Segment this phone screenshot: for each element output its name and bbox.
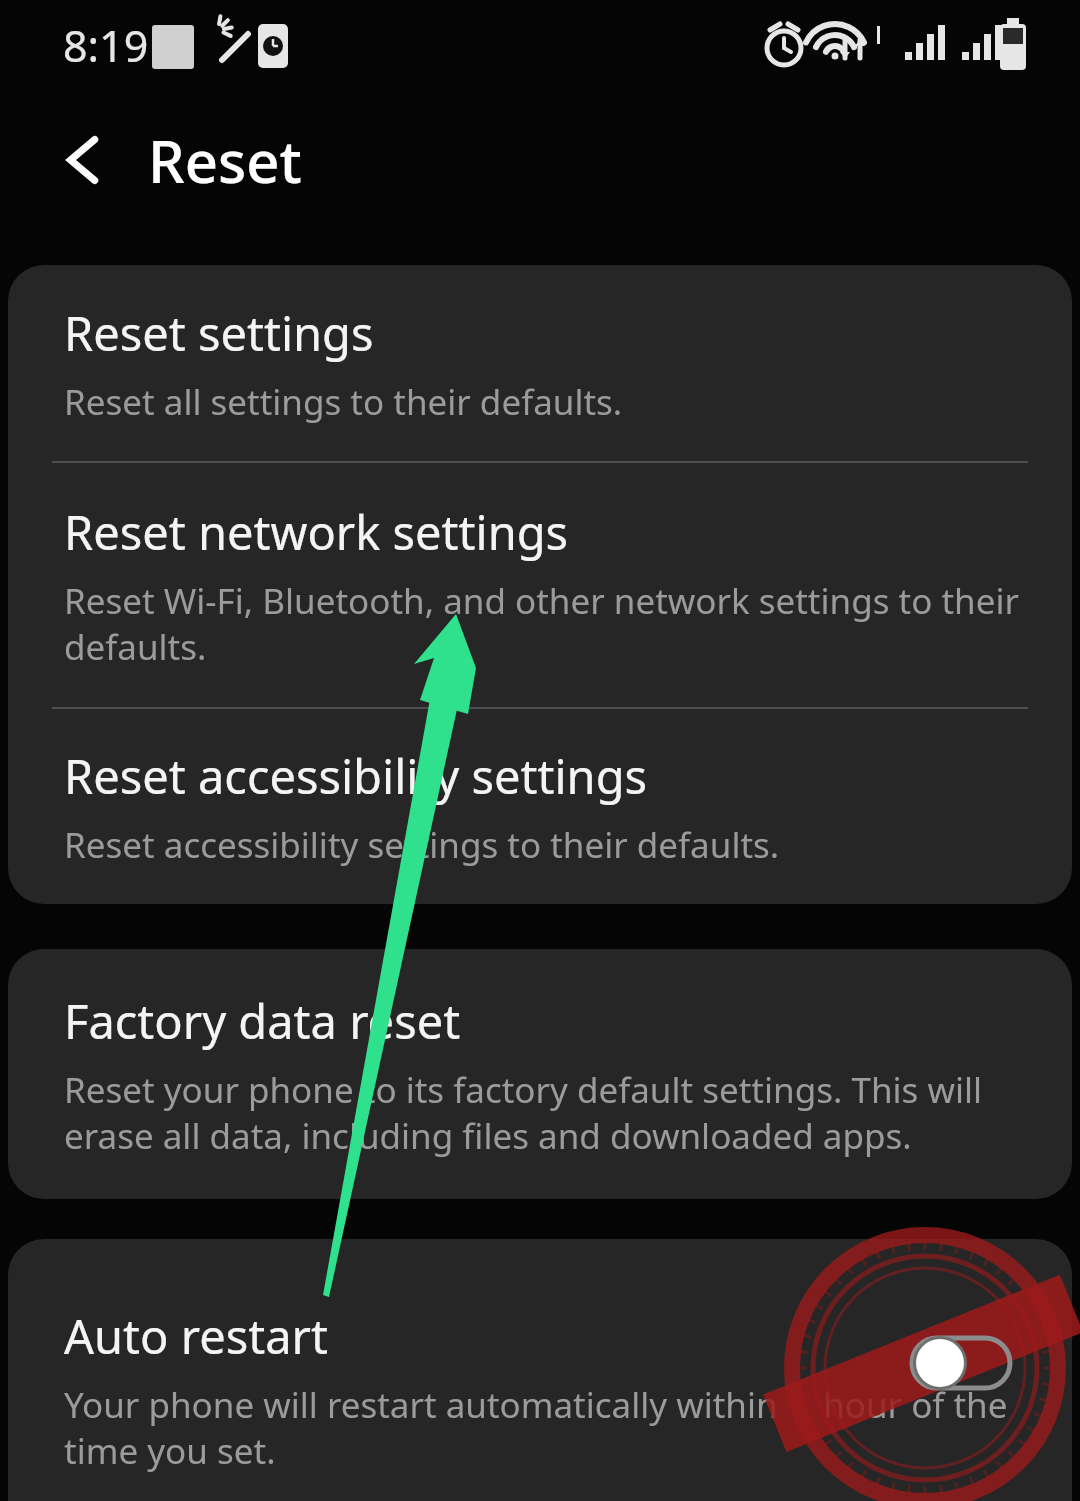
staticText: Reset (148, 121, 302, 200)
button[interactable]: Reset accessibility settings (8, 709, 1072, 904)
button[interactable]: Back (38, 114, 130, 206)
staticText: 8:19 (63, 16, 149, 75)
staticText: Reset network settings (64, 500, 569, 564)
staticText: Reset Wi-Fi, Bluetooth, and other networ… (64, 577, 1022, 670)
staticText: Reset your phone to its factory default … (64, 1066, 1022, 1159)
staticText: Auto restart (64, 1304, 328, 1368)
staticText: Reset accessibility settings (64, 744, 648, 808)
button[interactable]: Auto restart (8, 1239, 1072, 1501)
staticText: Reset accessibility settings to their de… (64, 821, 780, 869)
staticText: Reset settings (64, 301, 374, 365)
staticText: Reset all settings to their defaults. (64, 378, 623, 426)
button[interactable]: Reset settings (8, 265, 1072, 461)
staticText: Factory data reset (64, 989, 461, 1053)
button[interactable]: Auto restart toggle (903, 1328, 1017, 1394)
button[interactable]: Reset network settings (8, 463, 1072, 707)
staticText: Your phone will restart automatically wi… (64, 1381, 1022, 1474)
button[interactable]: Factory data reset (8, 949, 1072, 1199)
